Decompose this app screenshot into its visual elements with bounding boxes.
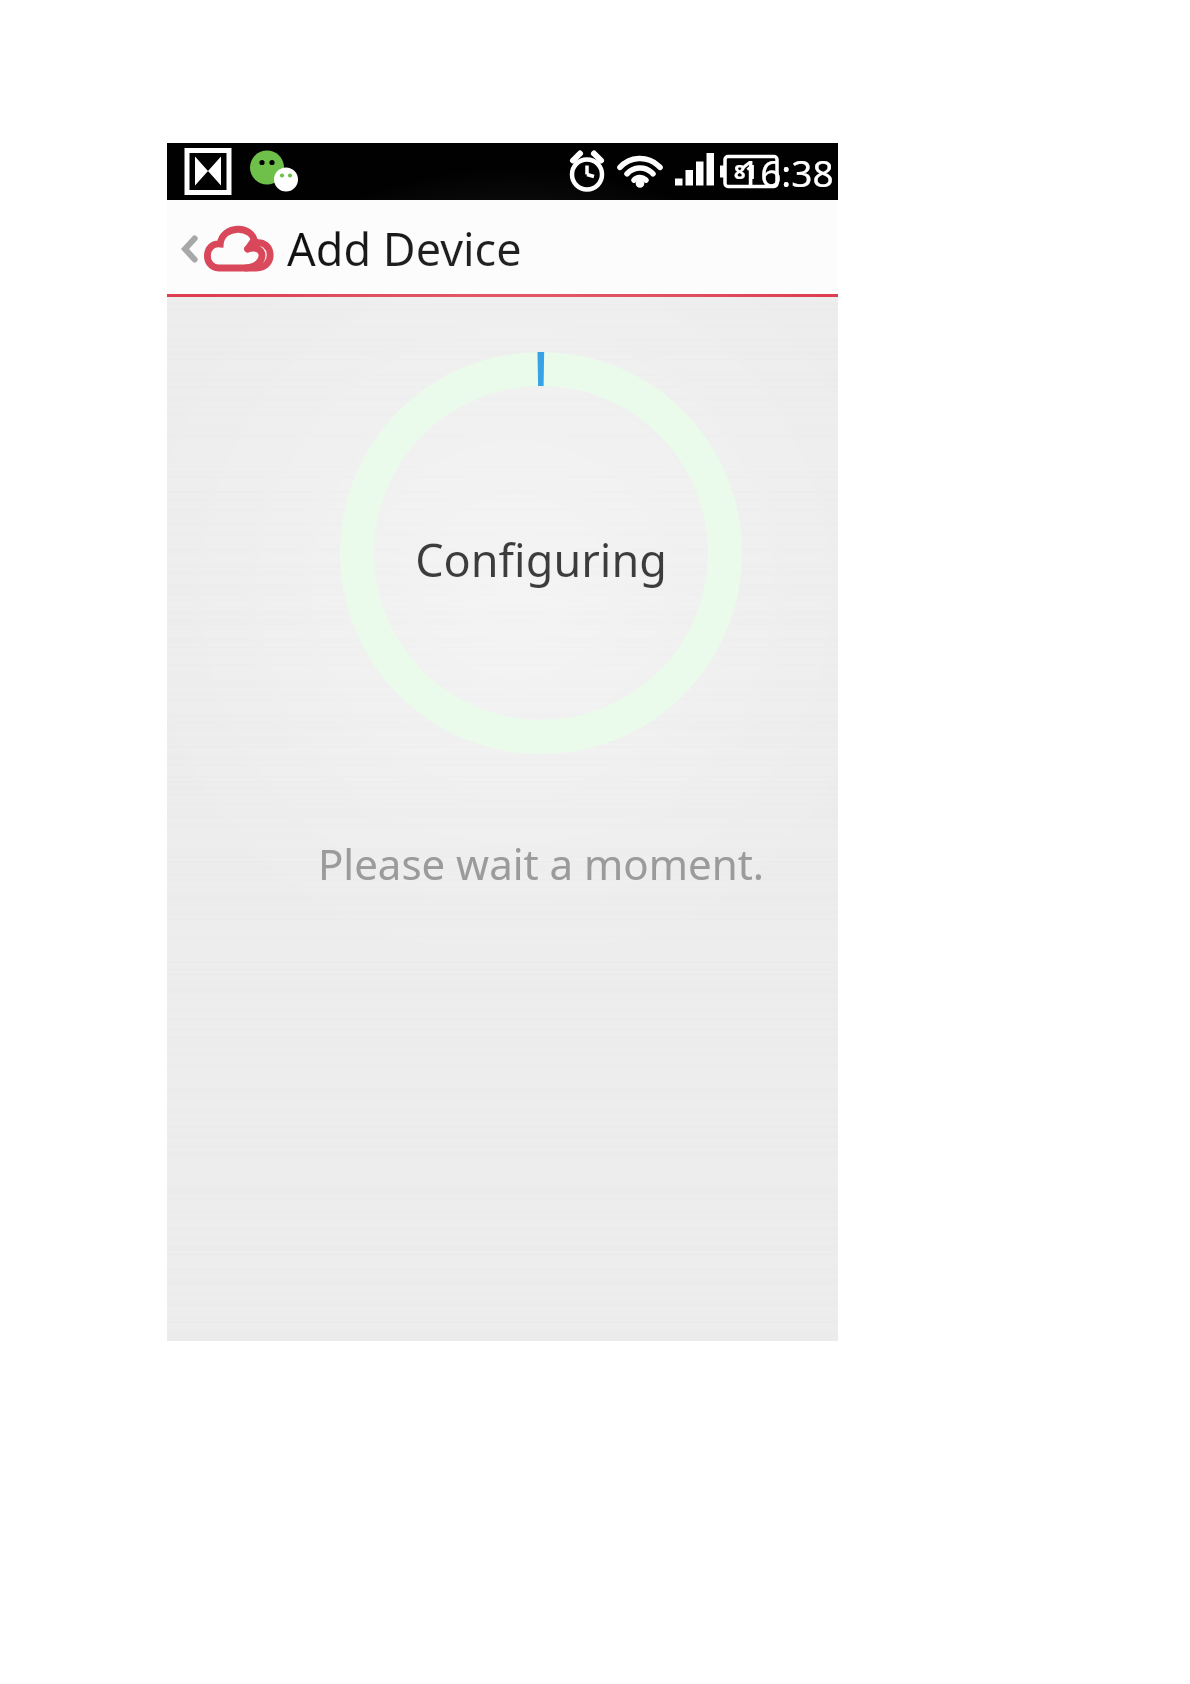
button[interactable]: Back to Add Device bbox=[173, 208, 528, 289]
staticText: Please wait a moment. bbox=[213, 835, 869, 892]
staticText: Add Device bbox=[287, 218, 522, 279]
staticText: 81 bbox=[734, 158, 757, 185]
staticText: 16:38 bbox=[739, 147, 834, 197]
staticText: Configuring bbox=[213, 529, 869, 590]
